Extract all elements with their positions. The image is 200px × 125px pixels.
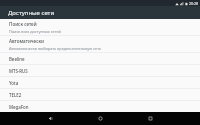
button[interactable]: Автоматически [0,36,200,52]
staticText: Поиск всех доступных сетей [9,29,61,34]
button[interactable]: MTS-RUS [0,65,200,76]
staticText: Доступные сети [8,9,55,17]
staticText: 20:28 [189,1,198,6]
staticText: Автоматически выбирать предпочтительную … [9,46,102,51]
button[interactable]: MegaFon [0,101,200,112]
button[interactable]: Back [40,112,60,125]
staticText: Автоматически [9,38,44,44]
button[interactable]: Поиск сетей [0,19,200,35]
staticText: TELE2 [9,92,22,98]
button[interactable]: Beeline [0,53,200,64]
staticText: Beeline [9,56,25,62]
staticText: Yota [9,80,19,86]
staticText: Поиск сетей [9,21,37,27]
staticText: MegaFon [9,104,29,110]
button[interactable]: Recents [140,112,160,125]
button[interactable]: Home [90,112,110,125]
button[interactable]: Yota [0,77,200,88]
button[interactable]: TELE2 [0,89,200,100]
staticText: MTS-RUS [9,68,28,74]
